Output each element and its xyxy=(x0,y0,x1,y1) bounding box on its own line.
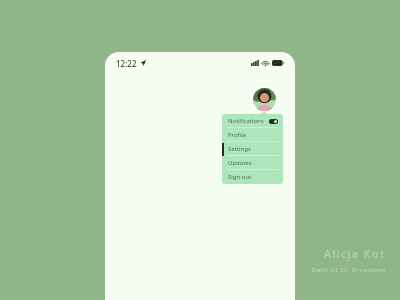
staticText: Daily UI 27. Dropdown xyxy=(312,266,386,274)
staticText: Profile xyxy=(228,131,247,139)
staticText: Settings xyxy=(228,145,251,153)
button[interactable]: Settings xyxy=(222,142,283,156)
staticText: Sign out xyxy=(228,173,252,181)
button[interactable]: Profile xyxy=(222,128,283,142)
staticText: 12:22 xyxy=(116,58,137,69)
staticText: Notifications xyxy=(228,117,264,125)
staticText: Alicja Kot xyxy=(324,246,386,261)
button[interactable]: Notifications toggle xyxy=(269,119,278,124)
button[interactable]: Account menu xyxy=(250,85,278,113)
staticText: Updates xyxy=(228,159,252,167)
button[interactable]: Sign out xyxy=(222,170,283,184)
button[interactable]: Notifications xyxy=(222,114,283,128)
button[interactable]: Updates xyxy=(222,156,283,170)
